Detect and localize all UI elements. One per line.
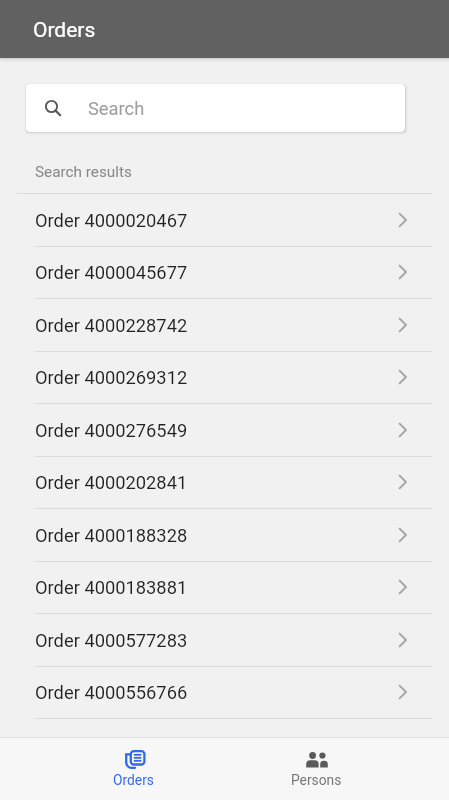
staticText: Orders	[33, 18, 96, 43]
staticText: Search results	[35, 163, 132, 181]
button[interactable]: Order 4000228742	[0, 299, 449, 351]
staticText: Order 4000556766	[35, 682, 188, 703]
staticText: Order 4000183881	[35, 577, 188, 598]
staticText: Order 4000228742	[35, 315, 188, 336]
staticText: Order 4000269312	[35, 367, 188, 388]
staticText: Search	[88, 98, 145, 119]
button[interactable]: Order 4000020467	[0, 194, 449, 246]
staticText: Order 4000020467	[35, 210, 188, 231]
button[interactable]: Order 4000045677	[0, 246, 449, 298]
button[interactable]: Search	[26, 84, 405, 132]
staticText: Order 4000045677	[35, 262, 188, 283]
staticText: Order 4000202841	[35, 472, 188, 493]
button[interactable]: Persons	[225, 738, 408, 800]
button[interactable]: Order 4000188328	[0, 509, 449, 561]
button[interactable]: Orders	[42, 738, 225, 800]
staticText: Persons	[291, 772, 342, 788]
staticText: Orders	[113, 772, 154, 788]
button[interactable]: Order 4000556766	[0, 666, 449, 718]
button[interactable]: Order 4000183881	[0, 561, 449, 613]
staticText: Order 4000577283	[35, 630, 188, 651]
button[interactable]: Order 4000577283	[0, 614, 449, 666]
button[interactable]: Order 4000269312	[0, 351, 449, 403]
staticText: Order 4000276549	[35, 420, 188, 441]
button[interactable]: Order 4000276549	[0, 404, 449, 456]
staticText: Order 4000188328	[35, 525, 188, 546]
button[interactable]: Order 4000202841	[0, 456, 449, 508]
